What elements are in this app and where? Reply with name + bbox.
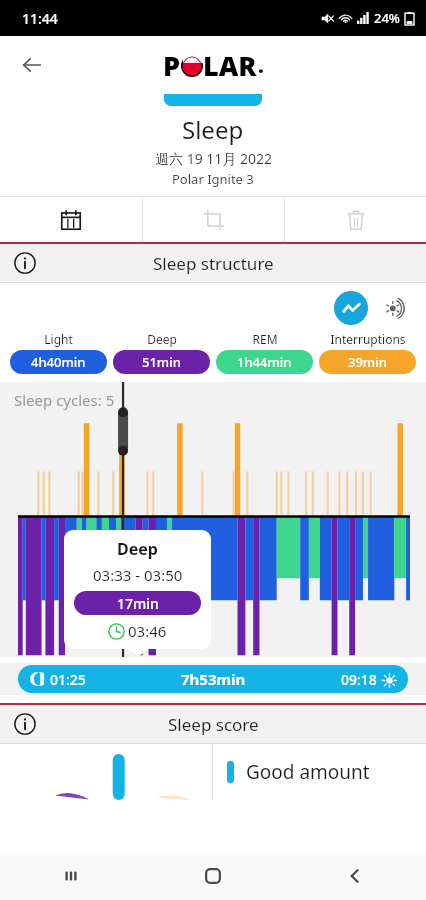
staticText: Light <box>44 331 73 347</box>
staticText: Sleep cycles: 5 <box>14 390 115 410</box>
staticText: Polar Ignite 3 <box>172 170 254 188</box>
staticText: Sleep structure <box>153 252 274 275</box>
button[interactable]: Light <box>10 331 107 374</box>
button[interactable]: Calendar <box>0 197 142 242</box>
staticText: 51min <box>142 353 181 371</box>
button[interactable]: Sleep phases view <box>378 291 412 325</box>
staticText: . <box>258 52 264 79</box>
staticText: Interruptions <box>330 331 406 347</box>
staticText: 7h53min <box>181 669 246 689</box>
button[interactable]: Deep <box>64 530 211 649</box>
staticText: 1h44min <box>237 353 292 371</box>
staticText: 01:25 <box>50 670 86 689</box>
staticText: Sleep <box>182 113 244 146</box>
button[interactable]: Hypnogram view <box>334 291 368 325</box>
staticText: Deep <box>117 538 158 560</box>
staticText: 17min <box>117 594 159 613</box>
staticText: REM <box>252 331 278 347</box>
staticText: 09:18 <box>341 670 377 689</box>
button[interactable]: Sleep score <box>0 705 426 743</box>
staticText: 03:33 - 03:50 <box>93 565 183 585</box>
button[interactable]: Home <box>142 852 284 900</box>
staticText: 39min <box>348 353 387 371</box>
button[interactable]: Crop <box>143 197 284 242</box>
button[interactable]: Delete <box>285 197 426 242</box>
staticText: LAR <box>203 47 257 84</box>
staticText: 週六 19 11月 2022 <box>155 149 272 168</box>
staticText: 24% <box>374 9 400 27</box>
staticText: Sleep score <box>168 713 259 736</box>
button[interactable]: 01:25 <box>18 665 408 693</box>
button[interactable]: REM <box>216 331 313 374</box>
staticText: 11:44 <box>22 9 58 28</box>
button[interactable]: Interruptions <box>319 331 416 374</box>
button[interactable]: Back <box>284 852 426 900</box>
button[interactable] <box>0 744 212 800</box>
button[interactable]: Back <box>10 43 54 87</box>
staticText: Deep <box>147 331 177 347</box>
staticText: 4h40min <box>31 353 86 371</box>
staticText: Good amount <box>246 759 370 785</box>
button[interactable]: Deep <box>113 331 210 374</box>
button[interactable] <box>164 94 262 106</box>
button[interactable]: Sleep structure <box>0 244 426 282</box>
button[interactable]: Good amount <box>213 744 426 800</box>
button[interactable]: Recents <box>0 852 142 900</box>
staticText: 03:46 <box>128 621 167 641</box>
staticText: P <box>163 47 181 84</box>
